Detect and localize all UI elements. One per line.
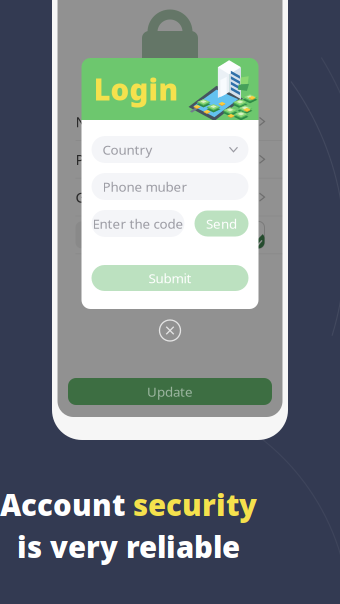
button[interactable]: Phone <box>57 141 282 179</box>
staticText: Fred <box>225 113 253 130</box>
button[interactable]: Send <box>194 210 248 236</box>
button[interactable]: Gender <box>57 179 282 216</box>
staticText: 130**** <box>201 150 253 168</box>
staticText: Enter the code <box>92 215 183 232</box>
staticText: security <box>133 485 257 524</box>
staticText: Login <box>93 69 178 108</box>
staticText: Nickname <box>75 112 144 131</box>
button[interactable]: Submit <box>91 265 248 291</box>
staticText: Country <box>102 141 152 158</box>
staticText: Male <box>223 188 253 206</box>
staticText: Update <box>147 383 193 400</box>
staticText: Phone <box>75 150 119 169</box>
staticText: Send <box>206 215 237 232</box>
staticText: is very reliable <box>17 527 240 566</box>
staticText: Gender <box>75 187 126 207</box>
staticText: Submit <box>148 269 191 287</box>
button[interactable]: Avatar <box>57 216 282 254</box>
staticText: Account <box>0 485 133 524</box>
button[interactable]: Nickname <box>57 103 282 141</box>
button[interactable]: Update <box>68 378 272 405</box>
staticText: Phone muber <box>102 178 187 195</box>
button[interactable]: Close <box>159 320 180 341</box>
